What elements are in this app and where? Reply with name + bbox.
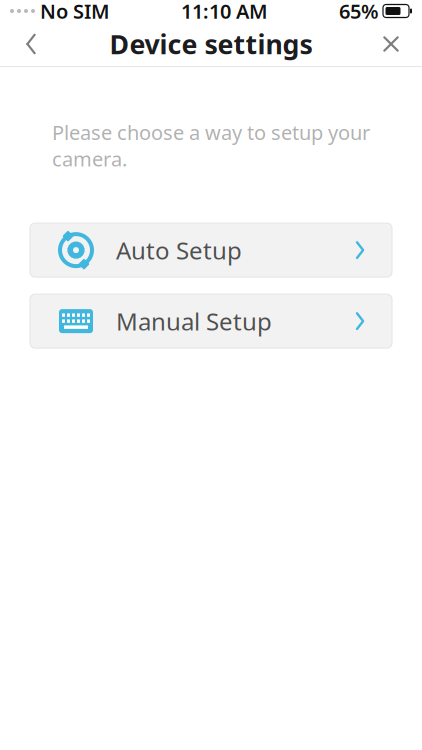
button[interactable]: Manual Setup (30, 294, 392, 348)
staticText: Manual Setup (116, 305, 272, 337)
button[interactable]: Close (366, 22, 416, 66)
button[interactable]: Back (6, 22, 56, 66)
staticText: 11:10 AM (181, 0, 268, 24)
staticText: Device settings (109, 26, 312, 62)
staticText: Auto Setup (116, 234, 242, 266)
staticText: No SIM (40, 0, 110, 24)
staticText: 65% (339, 0, 379, 24)
button[interactable]: Auto Setup (30, 223, 392, 277)
staticText: Please choose a way to setup your camera… (52, 119, 370, 172)
